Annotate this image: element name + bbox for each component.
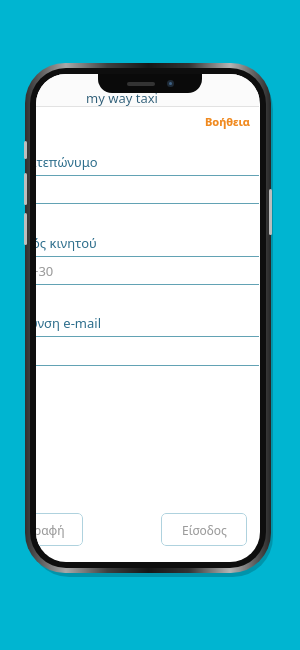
button[interactable]: Διεύθυνση e-mail (36, 310, 259, 336)
staticText: Ονοματεπώνυμο (36, 153, 98, 171)
staticText: +30 (36, 262, 54, 280)
staticText: Αριθμός κινητού (36, 234, 97, 252)
staticText: my way taxi (86, 89, 158, 107)
button[interactable]: Είσοδος (161, 513, 247, 546)
button[interactable]: Ονοματεπώνυμο (36, 149, 259, 175)
staticText: Εγγραφή (36, 522, 65, 538)
button[interactable]: Εγγραφή (36, 513, 83, 546)
button[interactable]: Βοήθεια (202, 110, 253, 133)
staticText: Διεύθυνση e-mail (36, 314, 102, 332)
staticText: Είσοδος (182, 522, 227, 538)
button[interactable]: Αριθμός κινητού (36, 230, 259, 256)
staticText: Βοήθεια (205, 114, 250, 129)
